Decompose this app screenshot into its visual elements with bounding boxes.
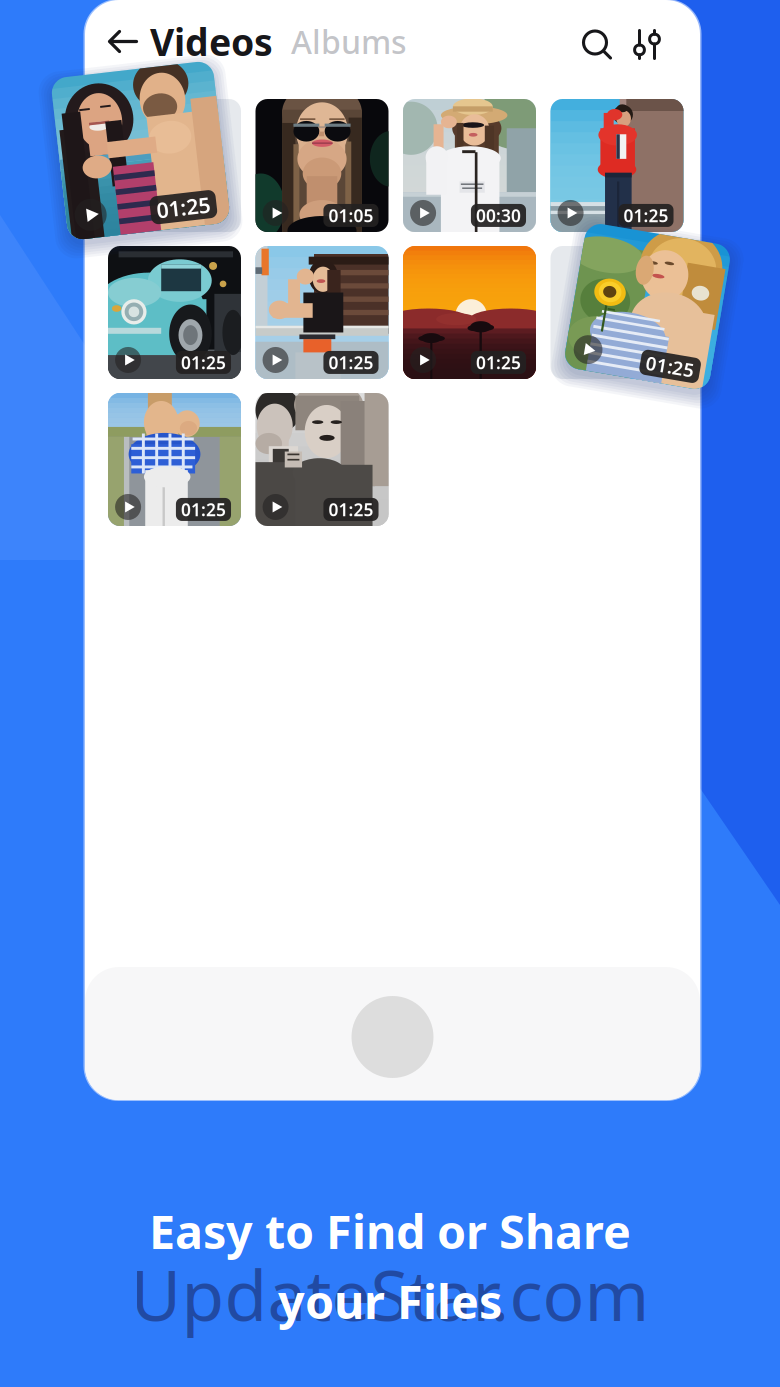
button[interactable]: 01:25 xyxy=(403,246,536,379)
staticText: 01:25 xyxy=(181,351,226,374)
staticText: UpdateStar.com xyxy=(130,1248,649,1340)
staticText: 01:25 xyxy=(623,204,668,227)
staticText: 01:25 xyxy=(181,498,226,521)
staticText: 01:25 xyxy=(328,351,373,374)
staticText: 01:25 xyxy=(476,351,521,374)
staticText: Easy to Find or Share xyxy=(149,1200,631,1262)
button[interactable]: 01:05 xyxy=(255,99,388,232)
button[interactable]: 01:25 xyxy=(108,246,241,379)
button[interactable]: Home xyxy=(351,996,433,1078)
staticText: 01:25 xyxy=(655,349,704,374)
button[interactable]: 00:30 xyxy=(403,99,536,232)
staticText: 01:25 xyxy=(150,197,204,226)
staticText: Albums xyxy=(291,20,407,63)
button[interactable]: 01:25 xyxy=(59,69,222,232)
staticText: 00:30 xyxy=(476,204,521,227)
staticText: 01:25 xyxy=(328,498,373,521)
button[interactable]: Back xyxy=(101,19,145,63)
button[interactable]: 01:25 xyxy=(255,393,388,526)
staticText: your Files xyxy=(278,1270,502,1332)
button[interactable]: Search xyxy=(572,19,622,69)
button[interactable]: 01:25 xyxy=(574,233,721,380)
staticText: Videos xyxy=(150,17,273,66)
button[interactable]: 01:25 xyxy=(108,393,241,526)
button[interactable]: Filter xyxy=(622,19,672,69)
staticText: 01:05 xyxy=(328,204,373,227)
button[interactable]: 01:25 xyxy=(550,99,683,232)
button[interactable]: 01:25 xyxy=(255,246,388,379)
